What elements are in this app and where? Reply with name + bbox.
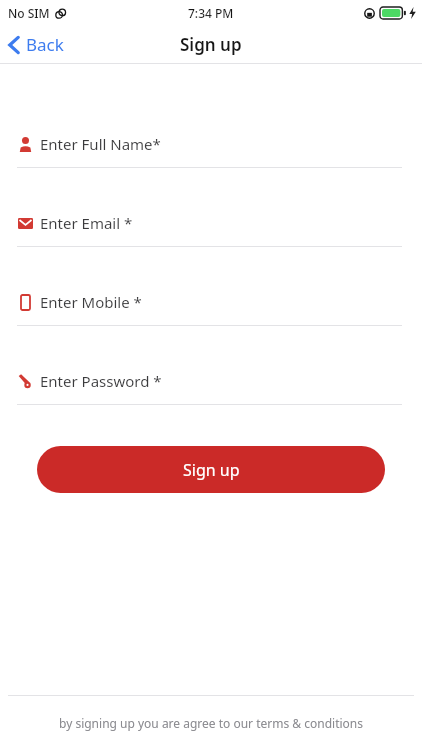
staticText: Sign up: [180, 33, 242, 56]
staticText: Sign up: [183, 459, 240, 481]
staticText: Enter Password *: [40, 371, 162, 391]
button[interactable]: Enter Email *: [0, 213, 422, 247]
staticText: Enter Mobile *: [40, 292, 142, 312]
button[interactable]: Enter Full Name*: [0, 134, 422, 168]
staticText: Back: [26, 33, 64, 56]
button[interactable]: Enter Mobile *: [0, 292, 422, 326]
staticText: 7:34 PM: [188, 5, 234, 21]
button[interactable]: Enter Password *: [0, 371, 422, 405]
button[interactable]: Sign up: [37, 446, 385, 493]
staticText: Enter Full Name*: [40, 134, 161, 154]
button[interactable]: Back: [0, 28, 78, 61]
staticText: Enter Email *: [40, 213, 133, 233]
staticText: by signing up you are agree to our terms…: [59, 715, 363, 731]
staticText: No SIM: [8, 5, 50, 21]
